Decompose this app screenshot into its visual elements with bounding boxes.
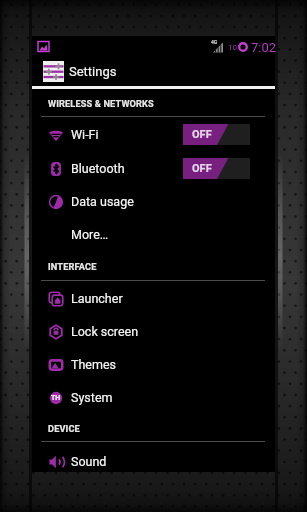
staticText: Settings [69,64,117,79]
staticText: Themes [71,357,117,372]
button[interactable]: Sound [32,445,275,478]
button[interactable]: Wi-Fi [32,118,275,151]
staticText: Wi-Fi [71,127,99,142]
staticText: More… [71,227,109,242]
button[interactable]: TH [32,381,275,414]
staticText: Launcher [71,291,123,306]
button[interactable]: Off switch [183,124,250,145]
staticText: Sound [71,454,107,469]
staticText: Bluetooth [71,161,125,176]
staticText: DEVICE [48,423,80,434]
staticText: OFF [192,162,212,175]
button[interactable]: Lock screen [32,315,275,348]
staticText: 7:02 [251,40,277,55]
button[interactable]: Settings [32,56,275,86]
staticText: 10 [228,43,237,52]
button[interactable]: Data usage [32,185,275,218]
staticText: INTERFACE [48,261,97,272]
button[interactable]: Bluetooth [32,152,275,185]
button[interactable]: More… [32,218,275,251]
staticText: OFF [192,128,212,141]
button[interactable]: Themes [32,348,275,381]
staticText: System [71,390,113,405]
staticText: Lock screen [71,324,139,339]
staticText: WIRELESS & NETWORKS [48,98,154,109]
staticText: TH [51,394,61,402]
button[interactable]: Off switch [183,158,250,179]
staticText: Data usage [71,194,134,209]
staticText: 4G [211,39,218,45]
button[interactable]: Launcher [32,282,275,315]
